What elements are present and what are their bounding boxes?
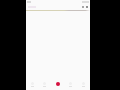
button[interactable]: Record	[51, 78, 64, 90]
button[interactable]: Library	[64, 78, 77, 90]
button[interactable]: Browse	[38, 78, 51, 90]
button[interactable]: Profile	[77, 78, 90, 90]
button[interactable]: Home	[26, 78, 38, 90]
